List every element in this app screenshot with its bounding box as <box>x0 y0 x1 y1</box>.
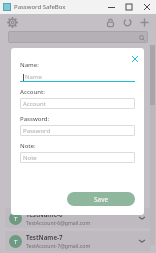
button[interactable]: Expand <box>136 212 148 224</box>
button[interactable]: Close <box>138 0 156 14</box>
button[interactable]: Add <box>137 15 152 30</box>
staticText: TestAccount-7@gmail.com <box>26 242 91 249</box>
staticText: TestName-7 <box>26 233 63 241</box>
staticText: Save <box>94 195 109 204</box>
staticText: Name <box>25 73 42 81</box>
staticText: Account: <box>20 88 45 96</box>
staticText: Password: <box>20 115 50 123</box>
button[interactable]: Save <box>67 192 135 206</box>
staticText: T <box>14 238 18 246</box>
staticText: Note: <box>20 142 36 150</box>
staticText: TestName-6 <box>26 210 63 218</box>
staticText: Account <box>23 100 46 108</box>
staticText: T <box>14 215 18 223</box>
button[interactable]: Maximize <box>120 0 138 14</box>
button[interactable]: Account <box>20 98 135 109</box>
button[interactable]: Refresh <box>120 15 135 30</box>
button[interactable]: Lock <box>103 15 118 30</box>
button[interactable]: Settings <box>5 15 20 30</box>
button[interactable]: Expand <box>136 235 148 247</box>
staticText: Name: <box>20 61 39 69</box>
button[interactable]: T <box>5 208 151 228</box>
button[interactable]: Note <box>20 152 135 163</box>
button[interactable]: Close dialog <box>129 53 140 64</box>
button[interactable]: Name <box>20 71 135 82</box>
button[interactable]: T <box>5 231 151 251</box>
staticText: Note <box>23 154 37 162</box>
staticText: Password <box>23 127 51 135</box>
button[interactable] <box>8 31 148 43</box>
staticText: TestAccount-6@gmail.com <box>26 219 91 226</box>
staticText: Password SafeBox <box>14 3 66 11</box>
button[interactable]: Minimize <box>102 0 120 14</box>
button[interactable]: Password <box>20 125 135 136</box>
